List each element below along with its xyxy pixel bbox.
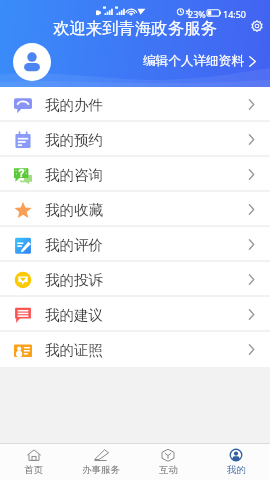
button[interactable]: 我的证照 (0, 332, 270, 367)
staticText: 我的评价 (45, 236, 103, 254)
staticText: 我的收藏 (45, 201, 103, 219)
staticText: 欢迎来到青海政务服务 (53, 18, 217, 39)
button[interactable]: 我的 (202, 444, 270, 480)
button[interactable]: 办事服务 (67, 444, 134, 480)
button[interactable]: 互动 (134, 444, 202, 480)
staticText: 我的办件 (45, 96, 103, 114)
button[interactable]: 我的评价 (0, 227, 270, 262)
staticText: 我的预约 (45, 131, 103, 149)
button[interactable]: 我的办件 (0, 87, 270, 122)
button[interactable]: Settings (247, 16, 267, 36)
staticText: 编辑个人详细资料 (143, 53, 244, 69)
staticText: 14:50 (223, 8, 247, 20)
staticText: 我的建议 (45, 306, 103, 324)
staticText: 我的 (227, 464, 246, 476)
staticText: 首页 (24, 464, 43, 476)
button[interactable]: 我的收藏 (0, 192, 270, 227)
button[interactable] (13, 43, 51, 81)
button[interactable]: 我的咨询 (0, 157, 270, 192)
staticText: 我的投诉 (45, 271, 103, 289)
staticText: 互动 (159, 464, 178, 476)
button[interactable]: 首页 (0, 444, 67, 480)
button[interactable]: 我的投诉 (0, 262, 270, 297)
button[interactable]: 我的建议 (0, 297, 270, 332)
staticText: 我的证照 (45, 341, 103, 359)
staticText: 我的咨询 (45, 166, 103, 184)
button[interactable]: 编辑个人详细资料 (143, 53, 257, 69)
staticText: 办事服务 (82, 464, 120, 476)
button[interactable]: 我的预约 (0, 122, 270, 157)
staticText: 23% (188, 8, 206, 20)
